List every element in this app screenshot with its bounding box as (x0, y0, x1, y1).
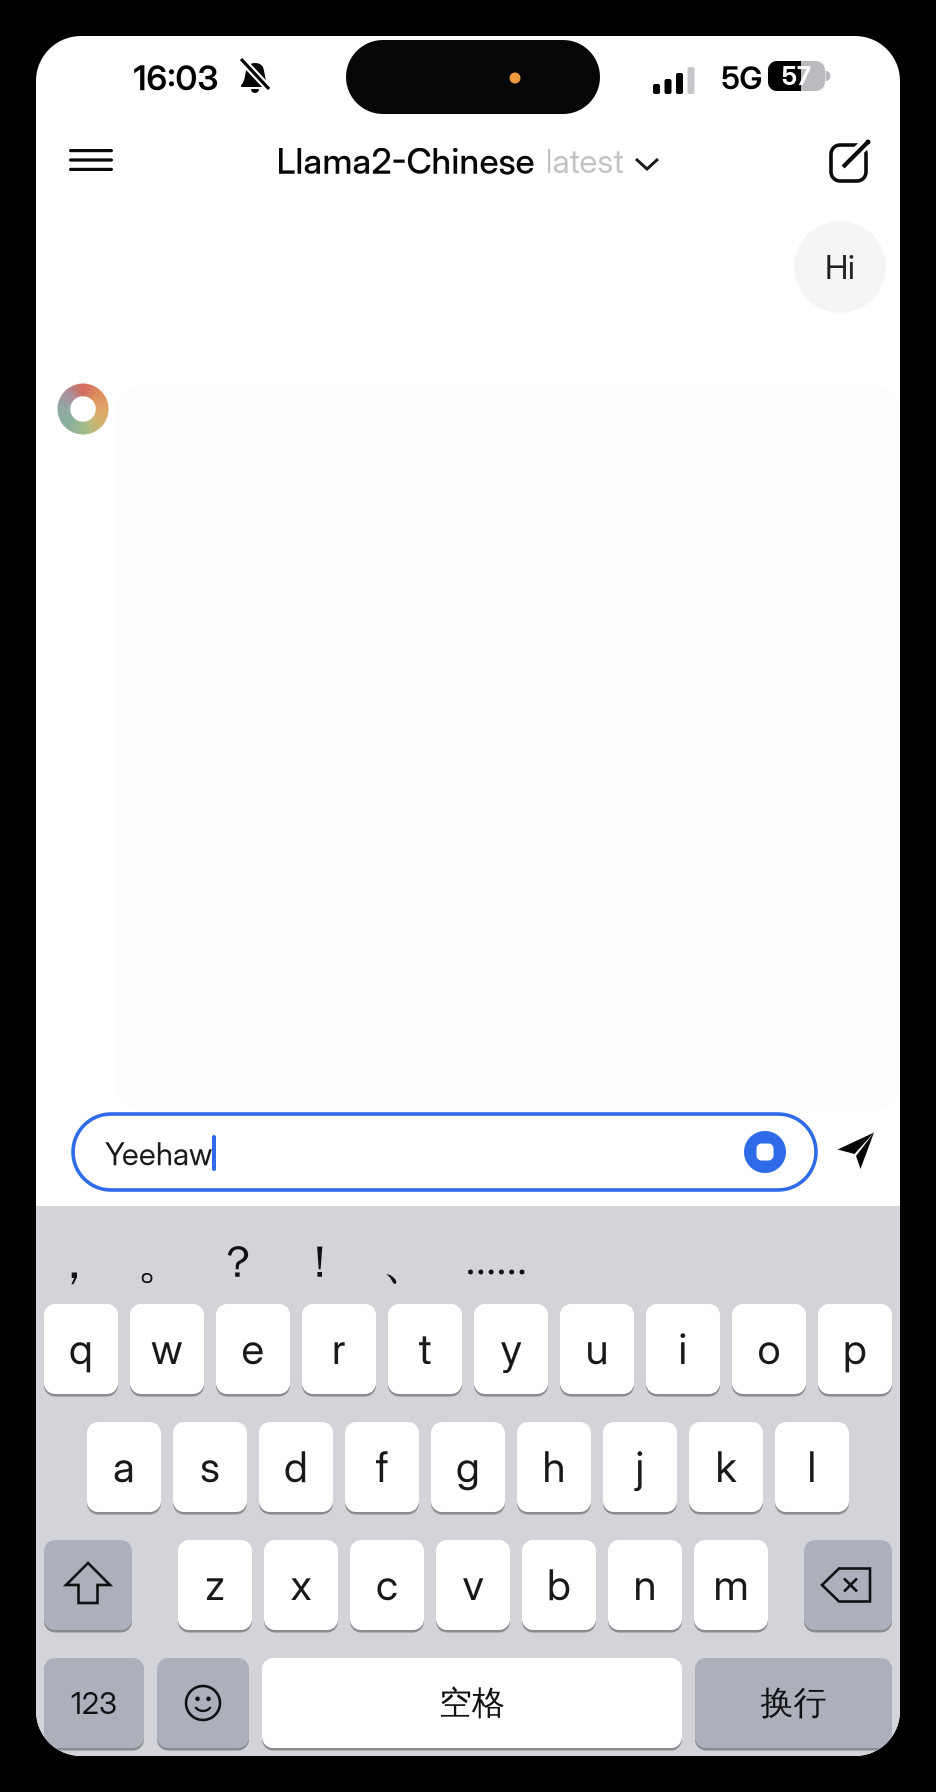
staticText: o (757, 1324, 780, 1374)
staticText: e (241, 1324, 264, 1374)
staticText: m (713, 1560, 748, 1610)
staticText: g (456, 1442, 480, 1492)
staticText: j (635, 1442, 644, 1492)
staticText: i (678, 1324, 687, 1374)
staticText: ！ (298, 1234, 342, 1290)
staticText: ， (50, 1232, 98, 1292)
staticText: w (151, 1324, 183, 1374)
staticText: 、 (382, 1232, 430, 1292)
staticText: 换行 (760, 1682, 826, 1724)
staticText: l (807, 1442, 816, 1492)
staticText: r (332, 1324, 346, 1374)
staticText: k (715, 1442, 736, 1492)
staticText: ？ (216, 1234, 260, 1290)
staticText: y (500, 1324, 521, 1374)
staticText: 。 (137, 1232, 185, 1292)
staticText: Yeehaw (105, 1135, 212, 1173)
staticText: p (843, 1324, 867, 1374)
staticText: 空格 (439, 1682, 505, 1724)
staticText: 5G (721, 59, 762, 97)
staticText: s (200, 1442, 220, 1492)
staticText: 16:03 (133, 57, 218, 98)
staticText: n (633, 1560, 656, 1610)
staticText: c (376, 1560, 398, 1610)
staticText: z (205, 1560, 225, 1610)
staticText: latest (545, 141, 623, 181)
staticText: d (284, 1442, 308, 1492)
staticText: a (113, 1442, 135, 1492)
staticText: b (547, 1560, 571, 1610)
staticText: t (418, 1324, 431, 1374)
staticText: f (375, 1442, 388, 1492)
staticText: 123 (71, 1685, 117, 1721)
staticText: 57 (782, 61, 811, 91)
staticText: v (462, 1560, 483, 1610)
staticText: Hi (825, 247, 855, 287)
staticText: h (542, 1442, 565, 1492)
staticText: x (290, 1560, 311, 1610)
staticText: u (585, 1324, 608, 1374)
staticText: Llama2-Chinese (276, 140, 534, 182)
staticText: q (69, 1324, 93, 1374)
